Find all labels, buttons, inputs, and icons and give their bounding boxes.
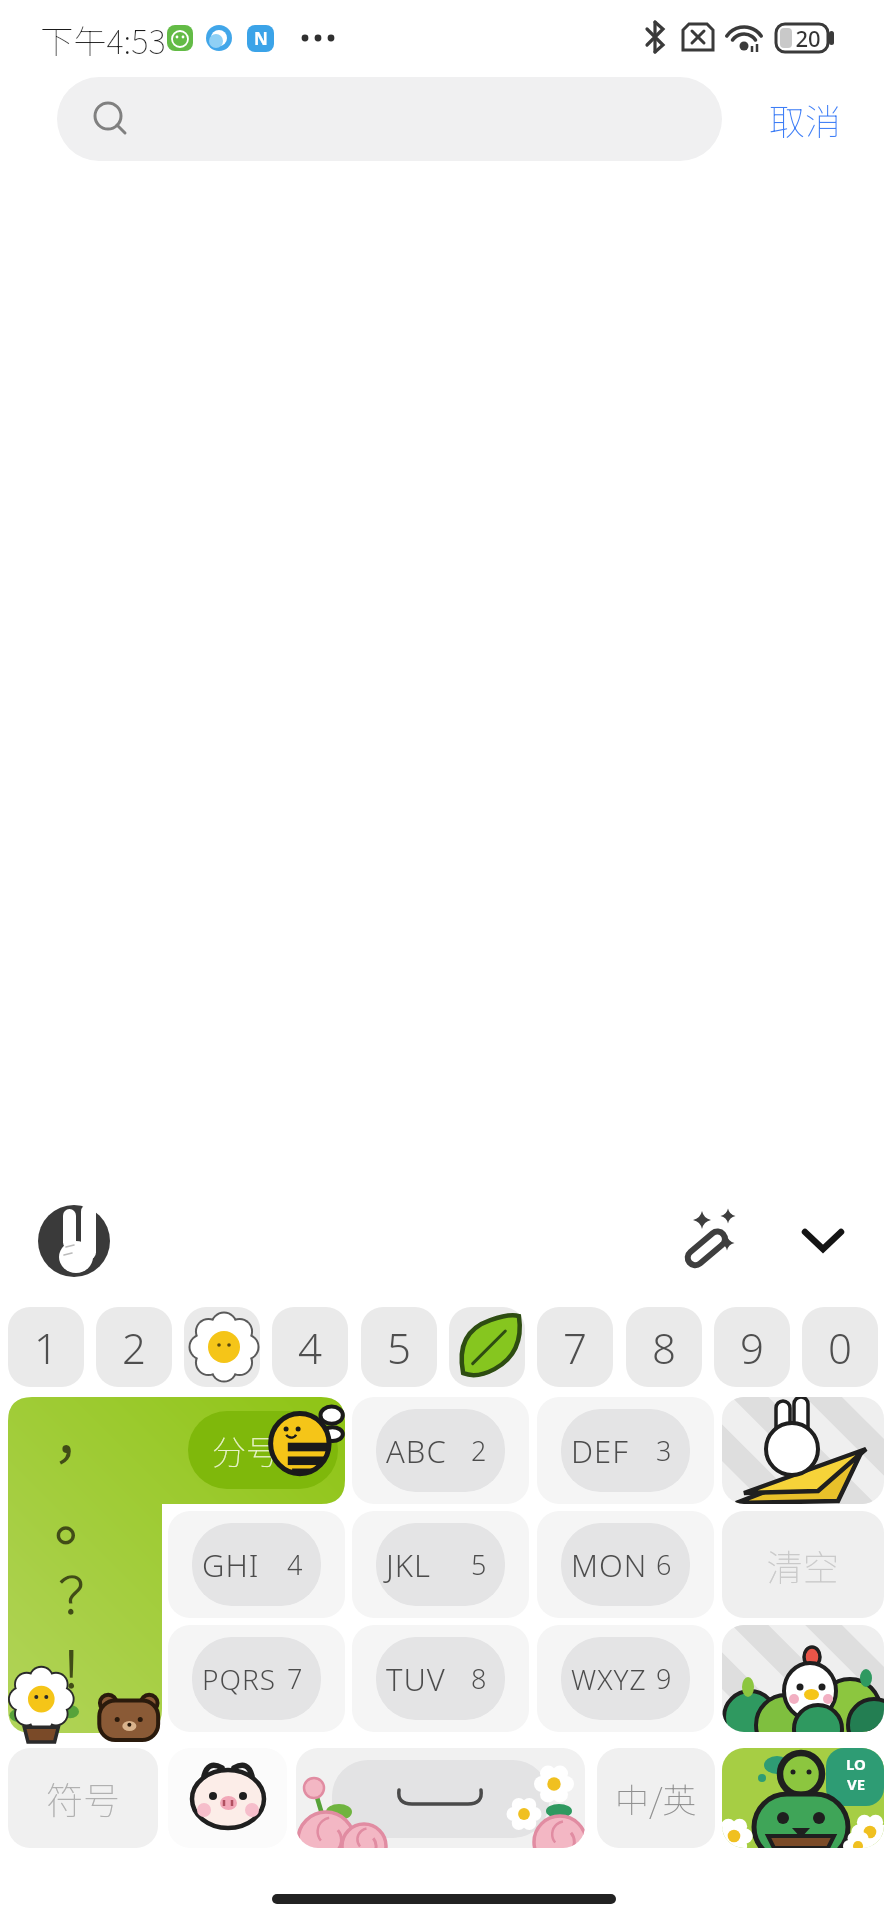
button[interactable] [168, 1748, 287, 1848]
button[interactable] [795, 1215, 855, 1265]
staticText: LO VE [846, 1754, 866, 1794]
staticText: ， [54, 1392, 113, 1470]
staticText: 6 [656, 1546, 672, 1583]
staticText: 符号 [46, 1771, 120, 1825]
button[interactable]: 9 [714, 1307, 790, 1387]
button[interactable] [57, 77, 722, 161]
staticText: GHI [202, 1544, 260, 1586]
button[interactable]: ABC [352, 1397, 529, 1504]
button[interactable]: WXYZ [537, 1625, 714, 1732]
staticText: N [254, 27, 268, 50]
staticText: 9 [740, 1319, 764, 1376]
staticText: 5 [471, 1546, 487, 1583]
staticText: 分号 [212, 1426, 280, 1475]
staticText: 8 [471, 1660, 487, 1697]
button[interactable]: 1 [8, 1307, 84, 1387]
button[interactable]: 5 [361, 1307, 437, 1387]
staticText: 2 [122, 1319, 146, 1376]
button[interactable]: PQRS [168, 1625, 345, 1732]
staticText: WXYZ [571, 1660, 647, 1698]
button[interactable]: LO VE [722, 1748, 884, 1848]
staticText: 下午4:53 [40, 16, 166, 60]
button[interactable]: JKL [352, 1511, 529, 1618]
staticText: 7 [287, 1660, 303, 1697]
staticText: PQRS [202, 1660, 277, 1698]
staticText: 8 [652, 1319, 676, 1376]
staticText: 9 [656, 1660, 672, 1697]
staticText: ？ [59, 1556, 109, 1626]
button[interactable]: 符号 [8, 1748, 158, 1848]
staticText: 5 [387, 1319, 411, 1376]
staticText: ！ [59, 1630, 109, 1700]
staticText: 3 [656, 1432, 672, 1469]
button[interactable]: MON [537, 1511, 714, 1618]
button[interactable]: GHI [168, 1511, 345, 1618]
button[interactable] [184, 1307, 260, 1387]
button[interactable] [449, 1307, 525, 1387]
button[interactable] [8, 1397, 345, 1733]
staticText: ABC [386, 1430, 447, 1472]
staticText: TUV [386, 1658, 446, 1700]
button[interactable]: 4 [272, 1307, 348, 1387]
button[interactable]: 清空 [722, 1511, 884, 1618]
staticText: 1 [34, 1319, 58, 1376]
button[interactable] [680, 1200, 750, 1270]
button[interactable]: 取消 [750, 90, 860, 148]
staticText: 中/英 [615, 1774, 697, 1823]
staticText: 2 [471, 1432, 487, 1469]
button[interactable]: 2 [96, 1307, 172, 1387]
staticText: 取消 [769, 93, 842, 145]
staticText: DEF [571, 1430, 629, 1472]
button[interactable] [722, 1397, 884, 1504]
button[interactable]: TUV [352, 1625, 529, 1732]
staticText: 0 [828, 1319, 852, 1376]
button[interactable]: 7 [537, 1307, 613, 1387]
button[interactable]: 中/英 [597, 1748, 715, 1848]
staticText: 4 [298, 1319, 322, 1376]
staticText: 7 [563, 1319, 587, 1376]
staticText: 。 [54, 1474, 113, 1552]
staticText: MON [571, 1544, 648, 1586]
staticText: 4 [287, 1546, 303, 1583]
staticText: 20 [795, 23, 821, 53]
staticText: JKL [386, 1544, 432, 1586]
button[interactable] [722, 1625, 884, 1732]
button[interactable]: 0 [802, 1307, 878, 1387]
button[interactable]: DEF [537, 1397, 714, 1504]
staticText: 清空 [767, 1539, 840, 1591]
button[interactable]: 8 [626, 1307, 702, 1387]
button[interactable] [36, 1203, 112, 1279]
button[interactable] [296, 1748, 585, 1848]
